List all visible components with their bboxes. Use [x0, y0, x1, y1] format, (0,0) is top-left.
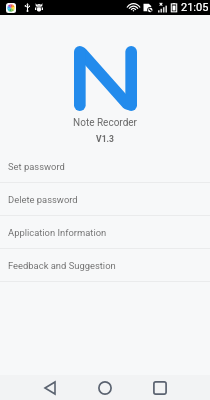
button[interactable]: Recent apps	[145, 375, 175, 400]
button[interactable]: Delete password	[0, 183, 210, 216]
button[interactable]: Home	[90, 375, 120, 400]
button[interactable]: Set password	[0, 150, 210, 183]
staticText: Set password	[8, 161, 65, 172]
staticText: Feedback and Suggestion	[8, 260, 116, 271]
staticText: Note Recorder	[0, 117, 210, 129]
button[interactable]: Back	[35, 375, 65, 400]
button[interactable]: Feedback and Suggestion	[0, 249, 210, 282]
staticText: Application Information	[8, 227, 107, 238]
staticText: 21:05	[181, 1, 209, 14]
staticText: Delete password	[8, 194, 78, 205]
staticText: V1.3	[0, 134, 210, 144]
button[interactable]: Application Information	[0, 216, 210, 249]
